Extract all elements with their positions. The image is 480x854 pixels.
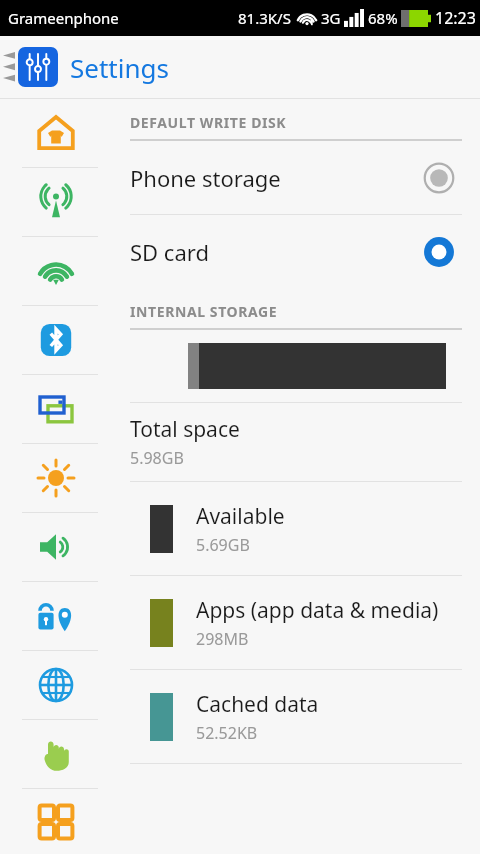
staticText: Available xyxy=(196,502,285,531)
staticText: 12:23 xyxy=(435,7,476,29)
staticText: DEFAULT WRITE DISK xyxy=(130,113,287,132)
staticText: 5.98GB xyxy=(130,447,184,469)
button[interactable]: Apps xyxy=(0,789,112,854)
staticText: Total space xyxy=(130,415,240,444)
button[interactable]: Wi-Fi xyxy=(0,237,112,305)
staticText: 68% xyxy=(368,8,398,28)
button[interactable]: SD card xyxy=(112,215,480,288)
button[interactable]: Cached data xyxy=(112,670,480,763)
button[interactable]: Total space xyxy=(112,403,480,481)
staticText: Apps (app data & media) xyxy=(196,596,439,625)
button[interactable]: Available xyxy=(112,482,480,575)
staticText: Phone storage xyxy=(130,163,422,193)
staticText: 5.69GB xyxy=(196,534,250,556)
button[interactable]: Language and input xyxy=(0,651,112,719)
button[interactable]: Phone storage xyxy=(112,141,480,214)
staticText: 52.52KB xyxy=(196,722,258,744)
staticText: 298MB xyxy=(196,628,249,650)
staticText: Settings xyxy=(70,50,169,85)
button[interactable]: Sound xyxy=(0,513,112,581)
button[interactable]: Home xyxy=(0,99,112,167)
button[interactable]: Screen mirroring xyxy=(0,375,112,443)
button[interactable]: Security and location xyxy=(0,582,112,650)
button[interactable]: Bluetooth xyxy=(0,306,112,374)
button[interactable]: Apps (app data & media) xyxy=(112,576,480,669)
button[interactable]: Gestures xyxy=(0,720,112,788)
staticText: Grameenphone xyxy=(8,8,119,28)
button[interactable]: Settings xyxy=(18,47,169,87)
button[interactable]: Display xyxy=(0,444,112,512)
staticText: 3G xyxy=(321,8,341,28)
button[interactable]: Mobile network xyxy=(0,168,112,236)
staticText: Cached data xyxy=(196,690,319,719)
staticText: SD card xyxy=(130,237,422,267)
staticText: 81.3K/S xyxy=(238,8,291,28)
staticText: INTERNAL STORAGE xyxy=(130,302,278,321)
